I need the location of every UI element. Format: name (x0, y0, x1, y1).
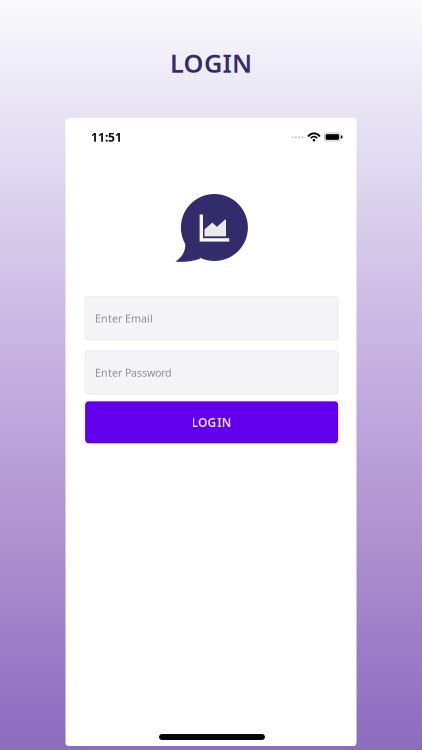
staticText: LOGIN (170, 46, 252, 80)
staticText: Enter Email (95, 311, 153, 325)
staticText: LOGIN (191, 414, 232, 430)
button[interactable]: Enter Email (85, 297, 338, 340)
button[interactable]: LOGIN (85, 401, 338, 443)
button[interactable]: Enter Password (85, 351, 338, 394)
staticText: 11:51 (91, 129, 122, 145)
staticText: Enter Password (95, 365, 172, 380)
